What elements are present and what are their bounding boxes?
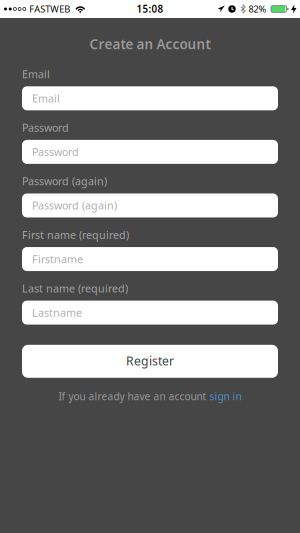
- staticText: Create an Account: [89, 35, 210, 53]
- staticText: Password: [32, 145, 79, 159]
- button[interactable]: Firstname: [22, 247, 278, 271]
- staticText: Register: [126, 352, 174, 369]
- staticText: Password (again): [22, 174, 107, 188]
- staticText: Email: [22, 67, 50, 81]
- staticText: Password: [22, 120, 69, 135]
- staticText: 15:08: [136, 2, 163, 16]
- staticText: Lastname: [32, 305, 82, 320]
- staticText: If you already have an account: [58, 389, 209, 403]
- staticText: Firstname: [32, 252, 83, 266]
- staticText: Last name (required): [22, 281, 128, 296]
- staticText: Email: [32, 91, 60, 106]
- button[interactable]: Email: [22, 86, 278, 110]
- staticText: sign in: [209, 389, 241, 403]
- staticText: 82%: [248, 3, 266, 15]
- button[interactable]: sign in: [209, 389, 241, 403]
- staticText: FASTWEB: [29, 3, 70, 15]
- button[interactable]: Password: [22, 140, 278, 164]
- button[interactable]: Password (again): [22, 193, 278, 217]
- button[interactable]: Lastname: [22, 301, 278, 325]
- staticText: Password (again): [32, 198, 117, 213]
- button[interactable]: Register: [22, 345, 278, 378]
- staticText: First name (required): [22, 227, 129, 242]
